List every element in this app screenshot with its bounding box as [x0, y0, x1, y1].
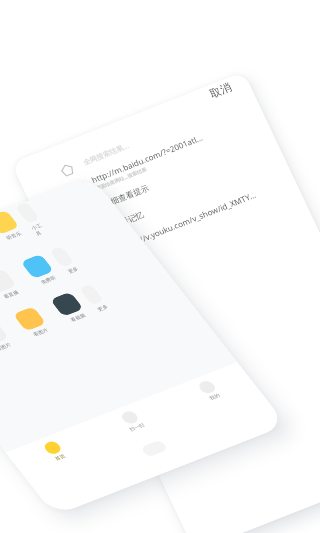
button[interactable]: 我的 [157, 347, 261, 434]
button[interactable]: 取消 [21, 21, 237, 231]
button[interactable]: 扫一扫 [80, 377, 183, 464]
staticText: 我的 [207, 390, 222, 403]
staticText: 全网搜索结果... [79, 128, 133, 181]
button[interactable]: 看直播 [0, 257, 36, 312]
button[interactable]: 听音乐 [0, 198, 38, 254]
other: 我的 [194, 376, 220, 398]
staticText: 取消 [204, 74, 237, 107]
button[interactable]: 更多 [44, 243, 85, 278]
button[interactable]: http://v.youku.com/v_show/id_XMTY... [94, 120, 296, 316]
staticText: 更多 [95, 301, 110, 314]
button[interactable]: 看小说 [0, 212, 1, 268]
staticText: 看直播 [1, 286, 21, 302]
staticText: 看图片 [31, 324, 50, 340]
button[interactable]: 看图片 [0, 309, 28, 365]
button[interactable]: 首页 [3, 407, 106, 495]
button[interactable]: 详细查看提示 [74, 78, 276, 274]
staticText: 听音乐 [4, 227, 23, 244]
staticText: 看图片 [0, 338, 13, 355]
staticText: 小工具 [28, 219, 53, 240]
staticText: 看视频 [68, 309, 87, 326]
other: 首页 [40, 437, 66, 459]
staticText: http://m.baidu.com/?=2001atl... [87, 99, 208, 217]
button[interactable]: 小工具 [8, 199, 57, 240]
staticText: 查看记忆 [109, 201, 148, 239]
staticText: 免费听 [38, 271, 58, 288]
button[interactable]: 更多 [74, 281, 115, 315]
staticText: 搜索结果网站...搜索结果 [93, 151, 151, 207]
staticText: 更多 [65, 264, 80, 276]
button[interactable]: 看图片 [0, 294, 65, 350]
staticText: 扫一扫 [127, 419, 146, 435]
other: 扫一扫 [117, 406, 143, 428]
staticText: http://v.youku.com/v_show/id_XMTY... [118, 151, 260, 289]
staticText: 首页 [53, 451, 67, 463]
button[interactable]: 查看记忆 [84, 99, 286, 295]
button[interactable]: 看视频 [36, 280, 103, 336]
button[interactable]: http://m.baidu.com/?=2001atl... [64, 57, 266, 253]
staticText: 详细查看提示 [99, 170, 153, 222]
button[interactable]: 免费听 [7, 242, 73, 298]
